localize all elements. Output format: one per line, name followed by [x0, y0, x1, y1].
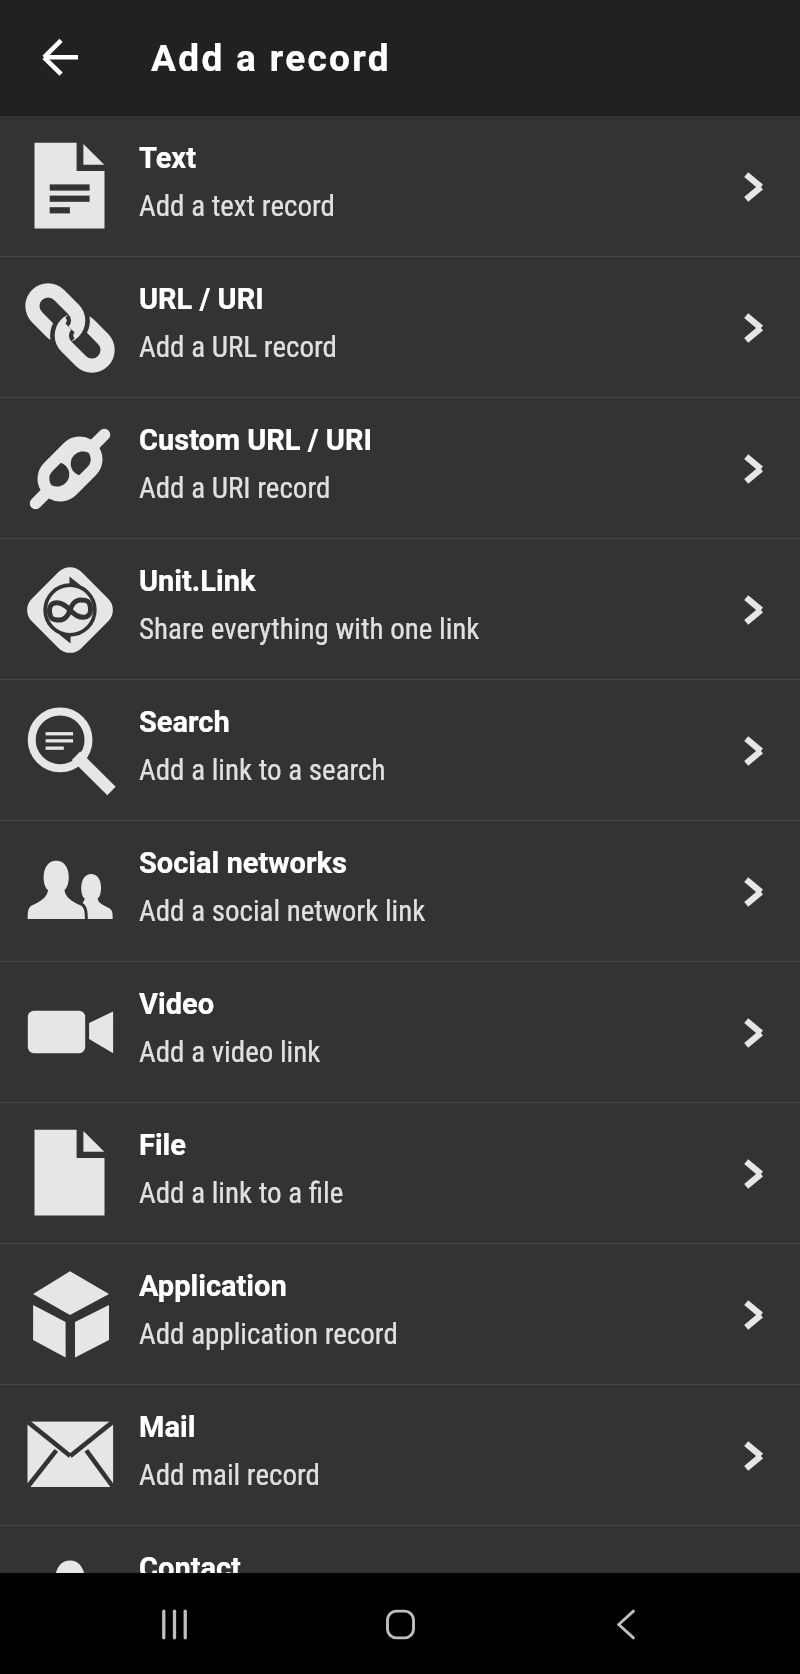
- staticText: Application: [139, 1269, 287, 1303]
- staticText: Add a link to a search: [139, 753, 386, 787]
- button[interactable]: Social networks: [0, 821, 800, 962]
- staticText: Video: [139, 987, 215, 1021]
- staticText: Add application record: [139, 1317, 398, 1351]
- button[interactable]: Custom URL / URI: [0, 398, 800, 539]
- staticText: Search: [139, 705, 230, 739]
- staticText: Mail: [139, 1410, 196, 1444]
- staticText: Add a URI record: [139, 471, 331, 505]
- staticText: Text: [139, 141, 196, 175]
- button[interactable]: Video: [0, 962, 800, 1103]
- button[interactable]: File: [0, 1103, 800, 1244]
- staticText: File: [139, 1128, 186, 1162]
- button[interactable]: Unit.Link: [0, 539, 800, 680]
- button[interactable]: Search: [0, 680, 800, 821]
- staticText: Add a social network link: [139, 894, 426, 928]
- button[interactable]: URL / URI: [0, 257, 800, 398]
- staticText: Custom URL / URI: [139, 423, 372, 457]
- staticText: Unit.Link: [139, 564, 256, 598]
- staticText: Add mail record: [139, 1458, 320, 1492]
- staticText: Add a text record: [139, 189, 335, 223]
- staticText: Add a link to a file: [139, 1176, 344, 1210]
- staticText: Contact: [139, 1551, 241, 1585]
- button[interactable]: Recent apps: [134, 1584, 214, 1664]
- staticText: Share everything with one link: [139, 612, 480, 646]
- staticText: Add a record: [151, 37, 391, 80]
- button[interactable]: Application: [0, 1244, 800, 1385]
- button[interactable]: Contact: [0, 1526, 800, 1667]
- staticText: Add a URL record: [139, 330, 337, 364]
- staticText: URL / URI: [139, 282, 264, 316]
- button[interactable]: Back: [587, 1584, 667, 1664]
- staticText: Social networks: [139, 846, 347, 880]
- button[interactable]: Text: [0, 116, 800, 257]
- button[interactable]: Mail: [0, 1385, 800, 1526]
- button[interactable]: Home: [360, 1584, 440, 1664]
- button[interactable]: Navigate up: [21, 19, 98, 96]
- staticText: Add contact record: [139, 1599, 358, 1633]
- staticText: Add a video link: [139, 1035, 321, 1069]
